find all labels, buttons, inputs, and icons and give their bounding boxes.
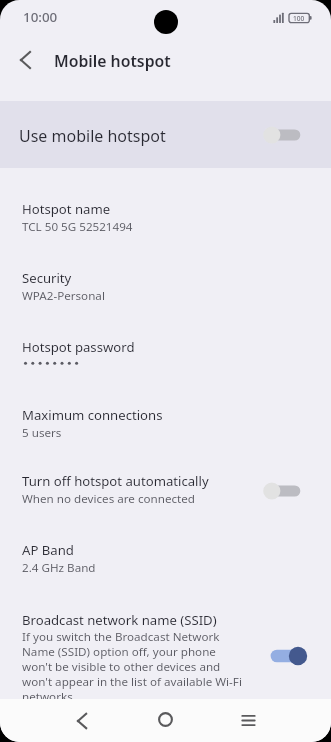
button[interactable]: Maximum connections	[0, 389, 331, 457]
staticText: Hotspot password	[22, 338, 135, 356]
button[interactable]: Turn off hotspot automatically toggle	[262, 481, 308, 501]
staticText: TCL 50 5G 52521494	[22, 219, 133, 235]
button[interactable]: Broadcast network name (SSID)	[0, 594, 331, 694]
button[interactable]: Home	[143, 698, 187, 741]
button[interactable]: Use mobile hotspot toggle	[262, 125, 308, 145]
button[interactable]: Back	[60, 699, 104, 742]
button[interactable]: Use mobile hotspot	[0, 101, 331, 168]
staticText: Broadcast network name (SSID)	[22, 611, 217, 629]
button[interactable]: Hotspot name	[0, 183, 331, 251]
staticText: 2.4 GHz Band	[22, 560, 96, 576]
staticText: Mobile hotspot	[54, 50, 171, 72]
staticText: WPA2-Personal	[22, 288, 105, 304]
button[interactable]: AP Band	[0, 524, 331, 592]
staticText: When no devices are connected	[22, 491, 196, 507]
staticText: Turn off hotspot automatically	[22, 472, 209, 490]
staticText: If you switch the Broadcast Network Name…	[22, 629, 245, 705]
button[interactable]: Broadcast network name toggle	[262, 646, 308, 666]
staticText: 100	[293, 14, 305, 23]
button[interactable]: Back	[7, 42, 43, 78]
staticText: Maximum connections	[22, 406, 163, 424]
button[interactable]: Security	[0, 252, 331, 320]
button[interactable]: Turn off hotspot automatically	[0, 455, 331, 523]
staticText: 10:00	[23, 8, 58, 26]
button[interactable]: Recent apps	[226, 699, 270, 742]
staticText: Use mobile hotspot	[19, 125, 166, 147]
staticText: 5 users	[22, 425, 62, 441]
staticText: Hotspot name	[22, 200, 111, 218]
staticText: AP Band	[22, 541, 74, 559]
staticText: Security	[22, 269, 72, 287]
button[interactable]: Hotspot password	[0, 321, 331, 389]
